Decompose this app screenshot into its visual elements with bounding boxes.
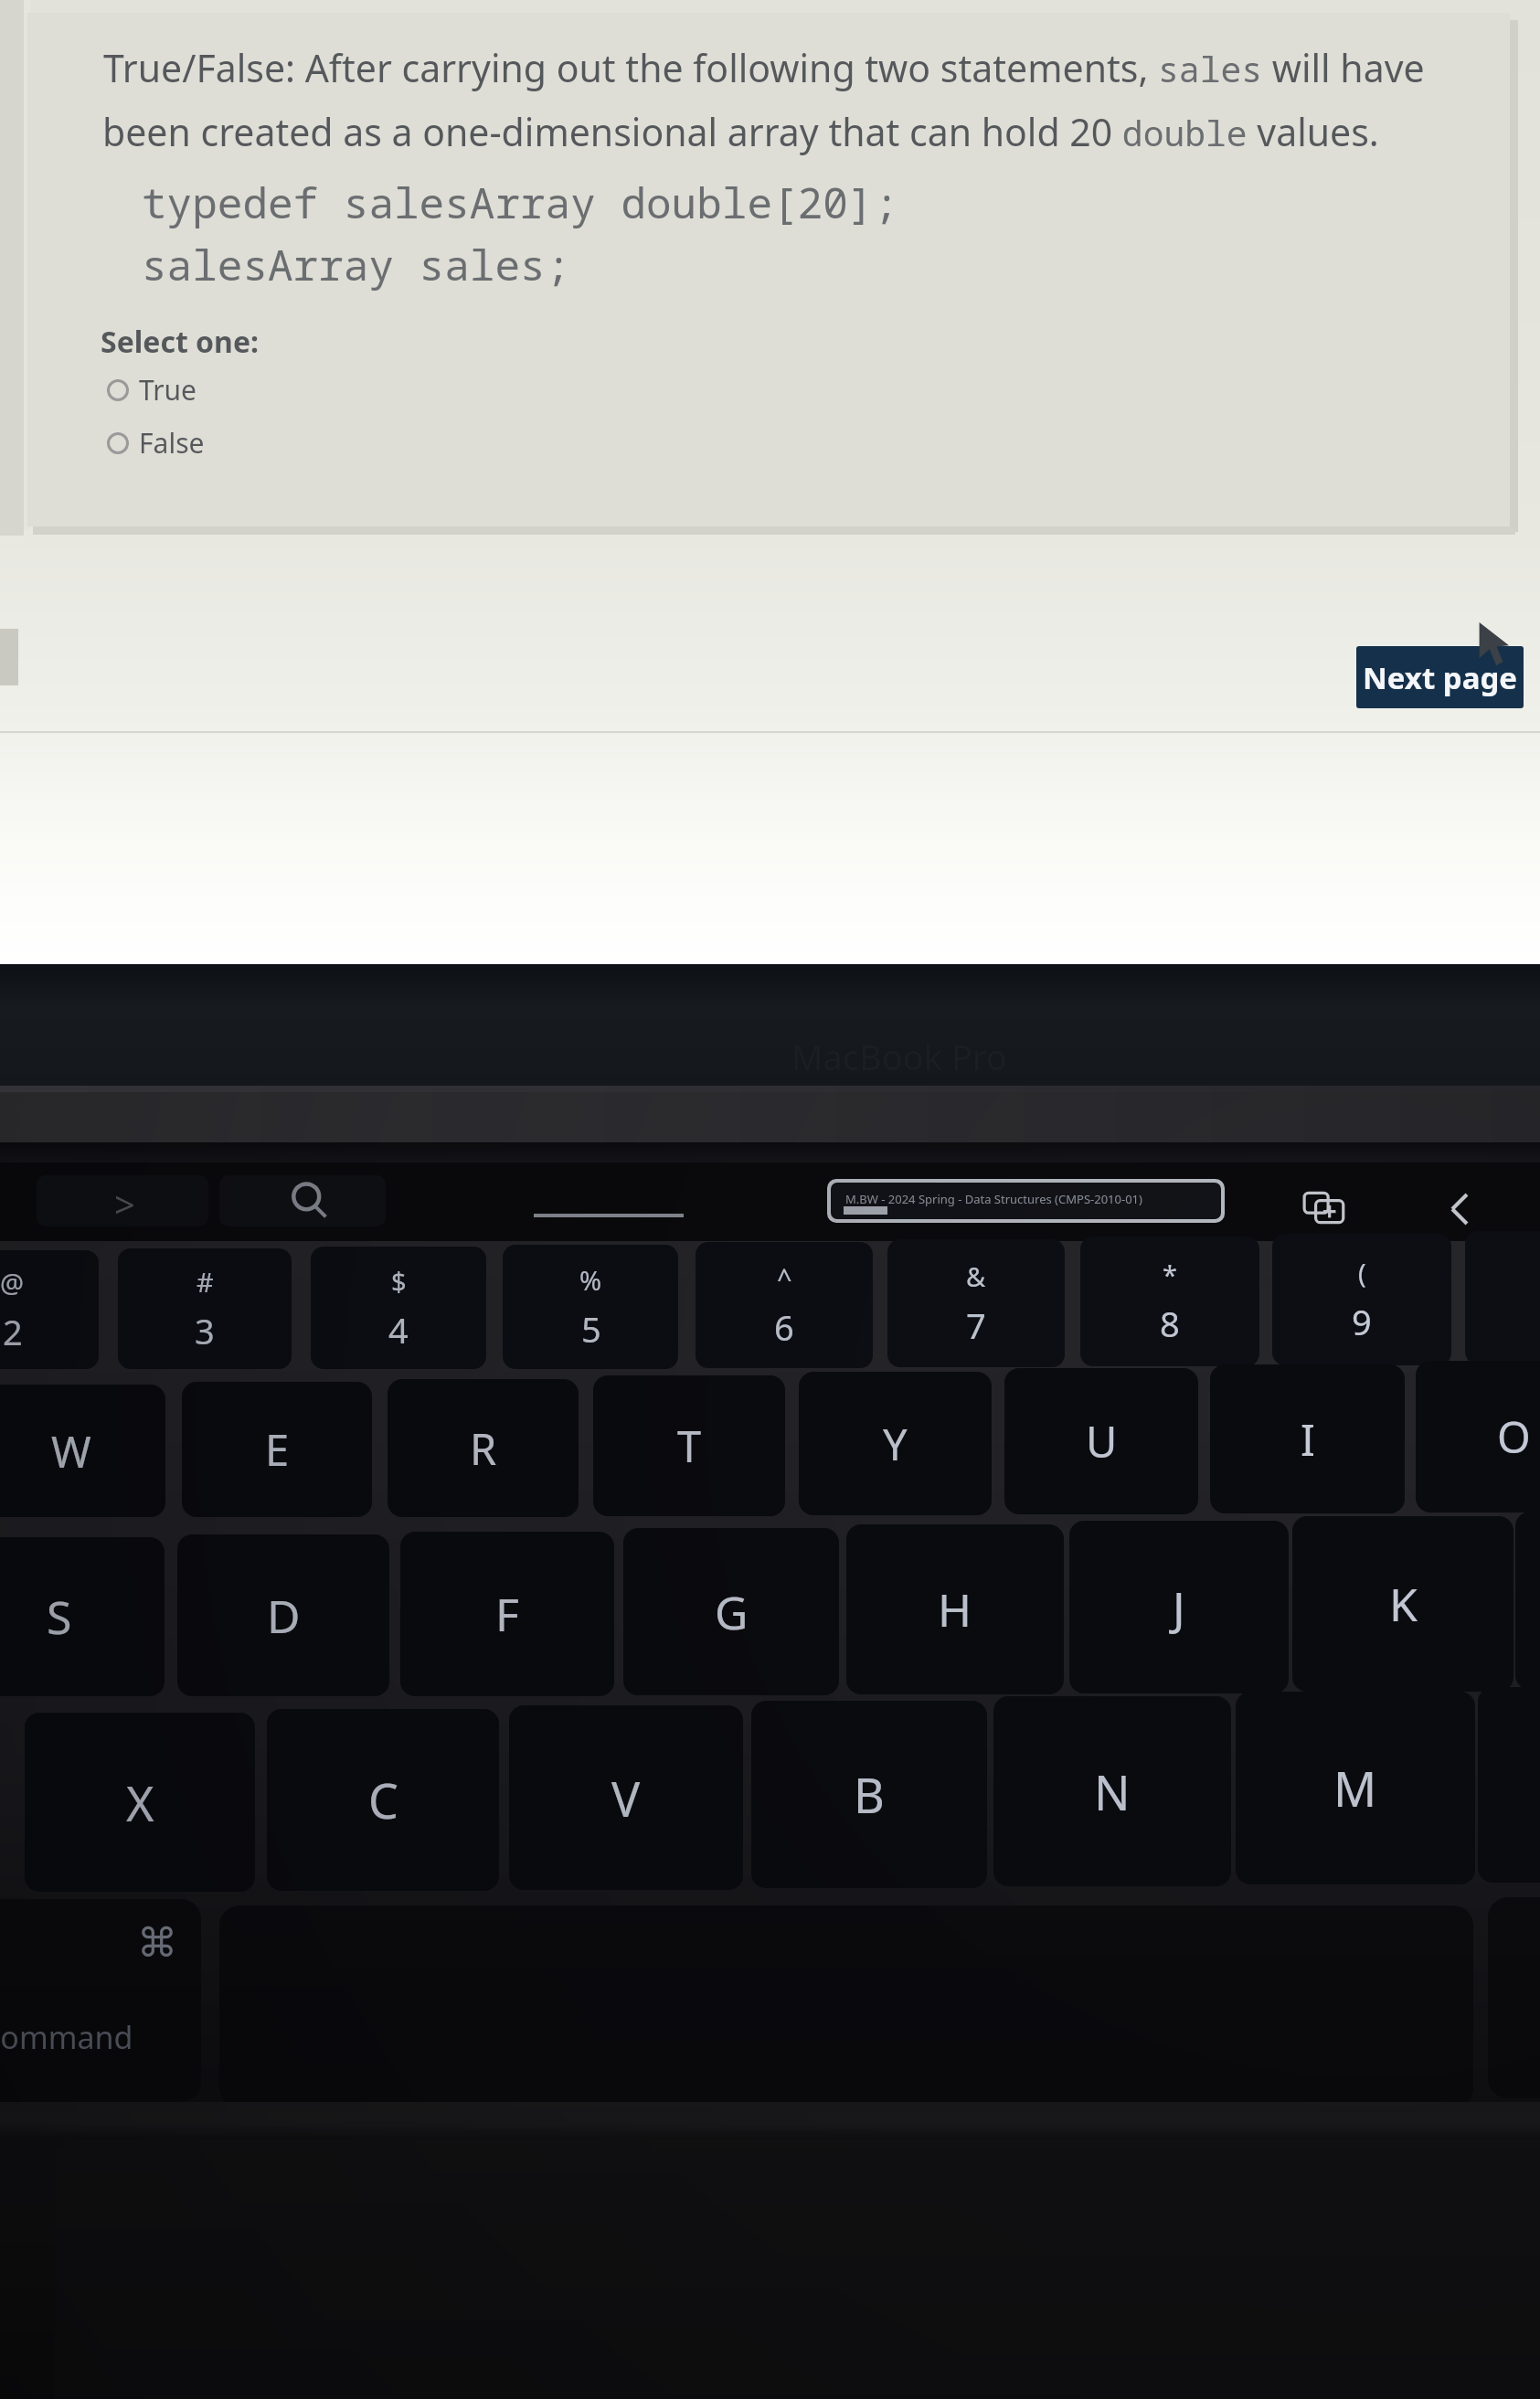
staticText: Next page	[1363, 657, 1518, 698]
staticText: X	[126, 1770, 154, 1835]
button[interactable]: V	[509, 1705, 743, 1890]
staticText: been created as a one-dimensional array …	[102, 106, 1379, 157]
staticText: M	[1333, 1756, 1377, 1820]
staticText: %	[579, 1262, 602, 1298]
button[interactable]: ^	[696, 1242, 873, 1368]
staticText: O	[1497, 1407, 1531, 1466]
button[interactable]: H	[846, 1524, 1064, 1694]
button[interactable]: O	[1416, 1361, 1540, 1513]
button[interactable]: Search	[219, 1175, 386, 1226]
staticText: 4	[388, 1306, 409, 1353]
button[interactable]: #	[118, 1248, 292, 1369]
staticText: $	[391, 1263, 407, 1299]
other: Search	[288, 1179, 330, 1221]
button[interactable]: C	[267, 1709, 499, 1891]
staticText: &	[966, 1258, 986, 1294]
button[interactable]: D	[177, 1534, 389, 1696]
button[interactable]: %	[503, 1245, 678, 1369]
staticText: 2	[3, 1308, 23, 1355]
button[interactable]: *	[1080, 1237, 1259, 1366]
button[interactable]: Y	[799, 1372, 992, 1515]
staticText: T	[677, 1417, 702, 1475]
button[interactable]: J	[1069, 1521, 1289, 1693]
staticText: *	[1163, 1257, 1177, 1292]
button[interactable]: W	[0, 1385, 165, 1517]
staticText: E	[265, 1420, 290, 1479]
button[interactable]: (	[1272, 1234, 1451, 1365]
button[interactable]: F	[400, 1532, 614, 1696]
button[interactable]: S	[0, 1537, 165, 1696]
staticText: 3	[195, 1307, 215, 1354]
staticText: R	[470, 1419, 497, 1478]
staticText: M.BW - 2024 Spring - Data Structures (CM…	[845, 1191, 1142, 1207]
staticText: 6	[774, 1303, 794, 1351]
button[interactable]: $	[311, 1247, 486, 1369]
staticText: H	[938, 1578, 972, 1640]
staticText: 8	[1160, 1300, 1180, 1347]
button[interactable]: True	[104, 371, 207, 409]
other: New window	[1301, 1184, 1349, 1232]
staticText: salesArray sales;	[142, 236, 571, 293]
staticText: command	[0, 2016, 133, 2058]
staticText: Select one:	[101, 322, 259, 362]
button[interactable]: N	[993, 1696, 1231, 1886]
staticText: 5	[581, 1305, 601, 1353]
staticText: 7	[966, 1301, 986, 1349]
button[interactable]: @	[0, 1250, 99, 1369]
staticText: J	[1173, 1576, 1185, 1639]
staticText: D	[267, 1585, 301, 1647]
button[interactable]: False	[104, 424, 214, 462]
staticText: S	[47, 1586, 72, 1648]
staticText: B	[854, 1762, 885, 1827]
staticText: N	[1094, 1759, 1131, 1824]
staticText: (	[1358, 1255, 1366, 1290]
button[interactable]: L	[1515, 1512, 1540, 1690]
button[interactable]: T	[593, 1375, 785, 1516]
button[interactable]: E	[182, 1382, 372, 1517]
staticText: False	[139, 424, 205, 462]
button[interactable]: &	[887, 1239, 1065, 1367]
button[interactable]: R	[388, 1379, 579, 1517]
staticText: 9	[1352, 1298, 1372, 1345]
button[interactable]: Expand control strip	[37, 1175, 208, 1226]
staticText: W	[51, 1422, 91, 1481]
staticText: True	[139, 371, 197, 409]
button[interactable]: Next page	[1356, 646, 1524, 708]
staticText: ^	[777, 1260, 792, 1296]
staticText: True/False: After carrying out the follo…	[103, 42, 1425, 93]
other: Back	[1439, 1186, 1484, 1232]
staticText: K	[1389, 1573, 1418, 1635]
button[interactable]: I	[1210, 1364, 1405, 1513]
button[interactable]: X	[25, 1713, 255, 1892]
staticText: G	[715, 1581, 749, 1643]
button[interactable]: G	[623, 1528, 839, 1695]
staticText: @	[0, 1265, 25, 1300]
button[interactable]: B	[751, 1701, 987, 1888]
button[interactable]: Command	[0, 1899, 201, 2102]
staticText: U	[1086, 1412, 1118, 1470]
staticText: Y	[883, 1415, 908, 1473]
button[interactable]: M	[1236, 1692, 1475, 1884]
staticText: #	[196, 1264, 214, 1300]
staticText: F	[495, 1583, 519, 1645]
staticText: I	[1301, 1410, 1315, 1469]
staticText: V	[611, 1766, 641, 1831]
button[interactable]: K	[1292, 1516, 1513, 1692]
staticText: C	[368, 1767, 398, 1832]
staticText: >	[114, 1179, 135, 1228]
staticText: ⌘	[137, 1919, 177, 1966]
button[interactable]: U	[1004, 1368, 1198, 1514]
staticText: typedef salesArray double[20];	[142, 174, 898, 231]
